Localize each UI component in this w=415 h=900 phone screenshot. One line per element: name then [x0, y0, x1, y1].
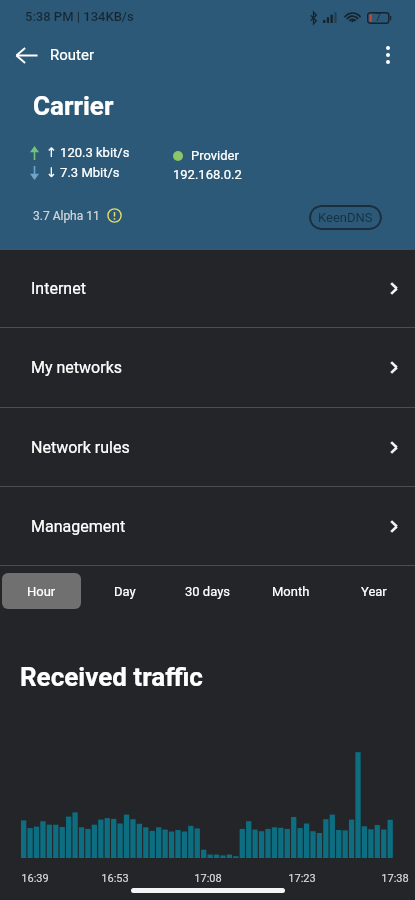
staticText: ↑ 120.3 kbit/s: [46, 145, 130, 160]
staticText: Hour: [27, 584, 56, 599]
button[interactable]: Network rules: [0, 408, 415, 486]
staticText: 17:08: [188, 872, 228, 885]
button[interactable]: Hour: [2, 573, 81, 609]
staticText: Network rules: [31, 438, 130, 457]
staticText: Carrier: [33, 91, 114, 121]
staticText: Management: [31, 517, 126, 536]
staticText: 16:53: [95, 872, 135, 885]
staticText: Received traffic: [20, 662, 203, 692]
button[interactable]: Internet: [0, 250, 415, 327]
staticText: Month: [272, 584, 310, 599]
staticText: My networks: [31, 358, 122, 377]
staticText: Internet: [31, 279, 86, 298]
staticText: 30 days: [185, 584, 231, 599]
staticText: 17:23: [282, 872, 322, 885]
button[interactable]: KeenDNS: [309, 205, 382, 230]
staticText: 16:39: [15, 872, 55, 885]
button[interactable]: More options: [370, 37, 406, 73]
staticText: Provider: [191, 148, 239, 163]
staticText: Router: [50, 46, 95, 64]
button[interactable]: Year: [334, 573, 413, 609]
staticText: 3.7 Alpha 11: [33, 209, 100, 223]
staticText: 17:38: [375, 872, 415, 885]
button[interactable]: 30 days: [168, 573, 247, 609]
staticText: 5:38 PM | 134KB/s: [25, 9, 134, 24]
button[interactable]: Day: [85, 573, 164, 609]
staticText: Day: [114, 584, 136, 599]
button[interactable]: Management: [0, 487, 415, 565]
button[interactable]: Month: [251, 573, 330, 609]
button[interactable]: My networks: [0, 328, 415, 407]
staticText: ↓ 7.3 Mbit/s: [46, 165, 120, 180]
staticText: 192.168.0.2: [173, 167, 242, 182]
button[interactable]: Back: [8, 37, 44, 73]
staticText: 7: [375, 11, 382, 24]
staticText: Year: [361, 584, 387, 599]
staticText: KeenDNS: [318, 210, 373, 225]
